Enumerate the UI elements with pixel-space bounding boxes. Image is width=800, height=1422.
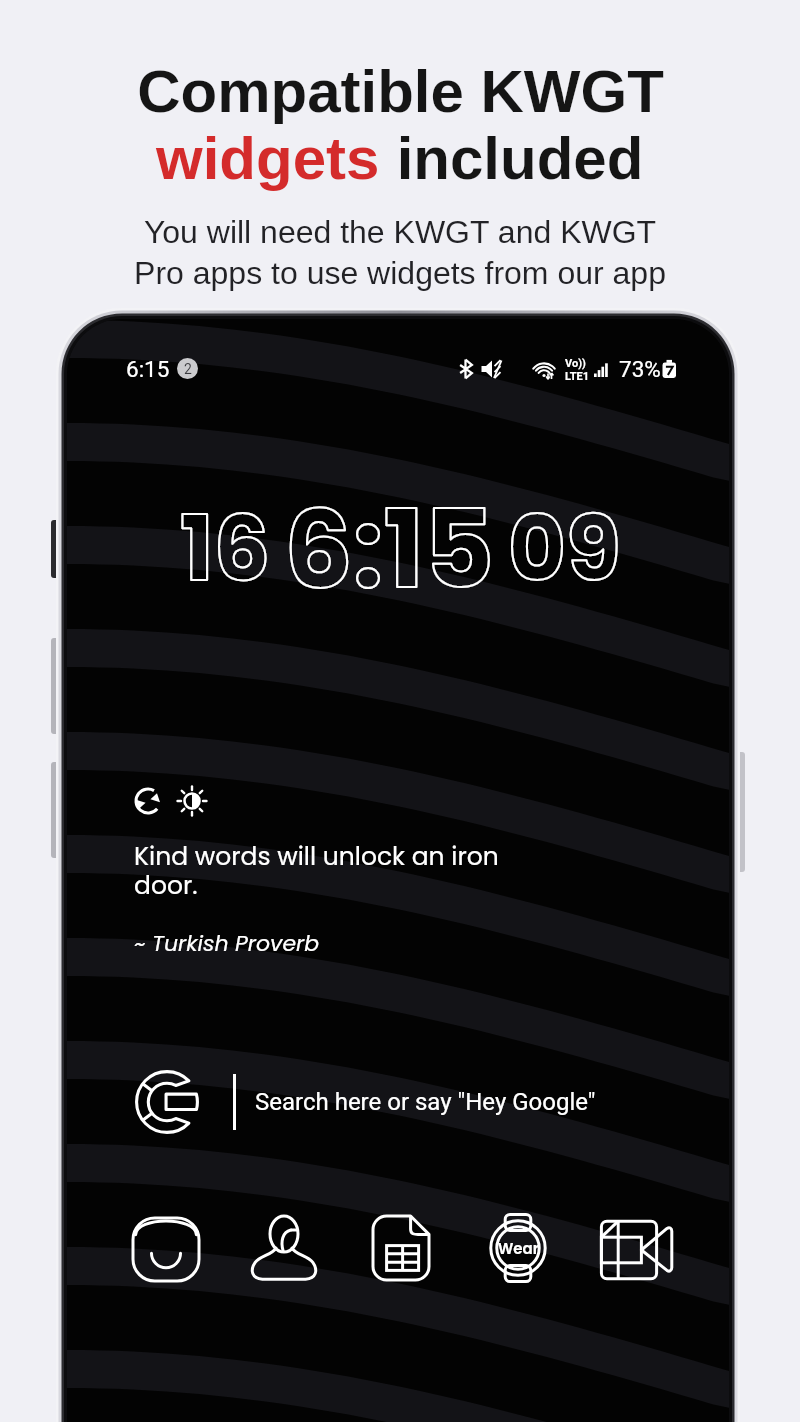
button[interactable]: Sheets	[361, 1208, 441, 1288]
staticText: widgets	[156, 125, 380, 192]
staticText: LTE1	[565, 370, 590, 383]
staticText: Vo))	[565, 357, 586, 370]
staticText: Search here or say "Hey Google"	[255, 1088, 596, 1116]
button[interactable]: Wear OS	[478, 1208, 558, 1288]
staticText: ~ Turkish Proverb	[134, 928, 320, 959]
staticText: included	[380, 125, 644, 192]
staticText: 09	[508, 487, 621, 612]
button[interactable]: Search here or say "Hey Google"	[128, 1063, 628, 1141]
button[interactable]: Camera	[597, 1208, 677, 1288]
staticText: You will need the KWGT and KWGT Pro apps…	[134, 214, 666, 291]
button[interactable]: Contacts	[244, 1208, 324, 1288]
staticText: Kind words will unlock an iron door.	[134, 839, 499, 902]
staticText: Wear	[498, 1238, 539, 1259]
staticText: 6:15	[284, 474, 495, 625]
staticText: 16	[180, 487, 271, 612]
staticText: 73%	[619, 356, 661, 382]
staticText: 2	[184, 361, 192, 377]
button[interactable]: Galaxy Store	[126, 1208, 206, 1288]
staticText: Compatible KWGT	[137, 58, 664, 125]
staticText: 6:15	[126, 356, 170, 382]
